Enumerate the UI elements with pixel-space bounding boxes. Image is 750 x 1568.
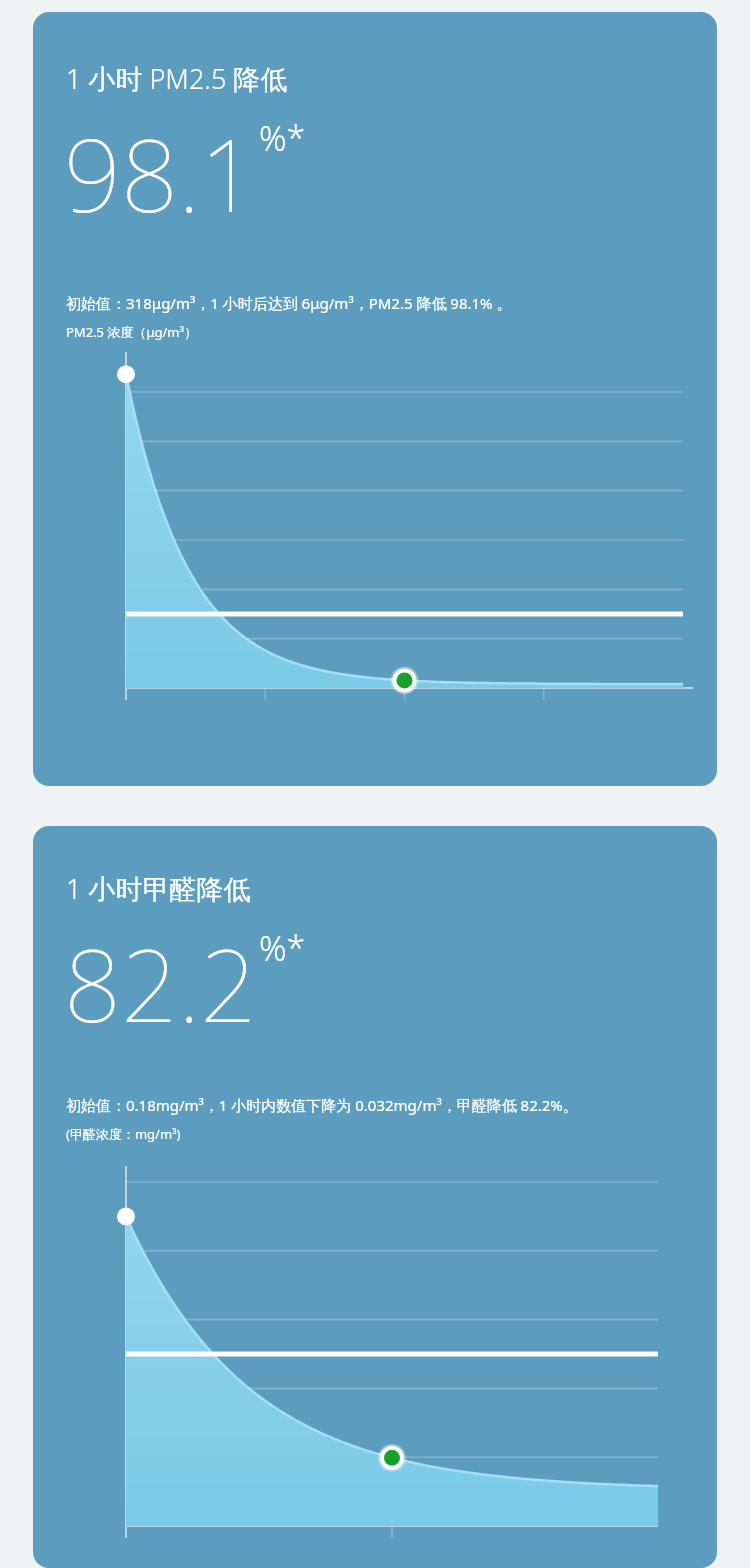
staticText: 82.2 [64,915,257,1051]
staticText: PM2.5 浓度（μg/m³） [66,323,198,341]
staticText: 1 小时 PM2.5 降低 [66,60,288,97]
staticText: 初始值：318μg/m³，1 小时后达到 6μg/m³，PM2.5 降低 98.… [66,293,512,313]
staticText: %* [259,925,306,971]
button[interactable]: 1 小时 PM2.5 降低 [33,12,717,786]
staticText: (甲醛浓度：mg/m³) [66,1125,181,1143]
staticText: 初始值：0.18mg/m³，1 小时内数值下降为 0.032mg/m³，甲醛降低… [66,1095,578,1115]
button[interactable]: 1 小时甲醛降低 [33,826,717,1568]
staticText: 1 小时甲醛降低 [66,870,251,907]
staticText: %* [259,115,306,161]
staticText: 98.1 [64,105,257,241]
